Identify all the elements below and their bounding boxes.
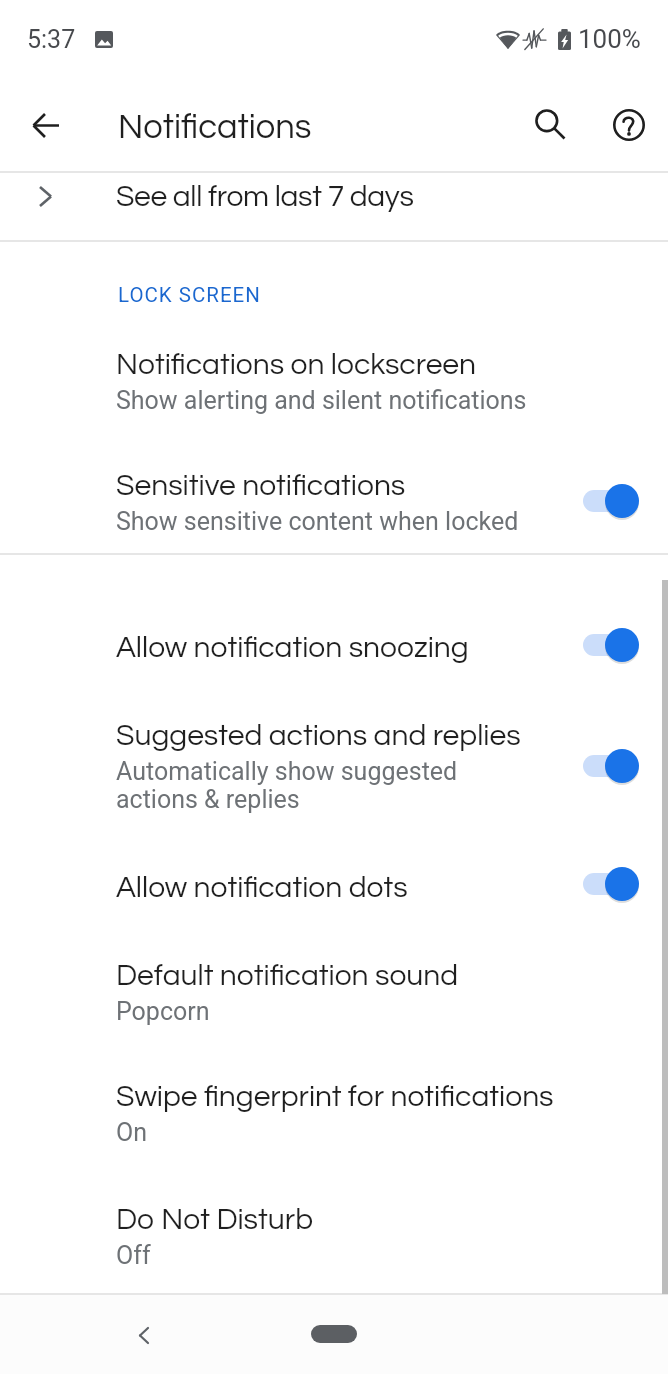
staticText: See all from last 7 days <box>116 181 414 212</box>
button[interactable]: Allow notification dots <box>0 848 668 914</box>
staticText: Swipe fingerprint for notifications <box>116 1081 554 1112</box>
button[interactable]: Home <box>311 1325 357 1343</box>
button[interactable]: Do Not Disturb <box>0 1182 668 1282</box>
staticText: Show sensitive content when locked <box>116 507 519 536</box>
button[interactable]: Help <box>595 91 663 159</box>
button[interactable]: Swipe fingerprint for notifications <box>0 1060 668 1160</box>
staticText: Default notification sound <box>116 960 459 991</box>
button[interactable]: Suggested actions and replies <box>0 700 668 828</box>
staticText: Popcorn <box>116 997 210 1026</box>
staticText: 5:37 <box>27 25 76 54</box>
staticText: Sensitive notifications <box>116 470 406 501</box>
button[interactable]: Sensitive notifications <box>0 450 668 550</box>
staticText: Show alerting and silent notifications <box>116 386 527 415</box>
button[interactable]: Allow notification snoozing <box>0 608 668 674</box>
button[interactable]: Back <box>109 1300 179 1370</box>
button[interactable]: Search <box>517 91 585 159</box>
button[interactable]: Notifications on lockscreen <box>0 330 668 430</box>
staticText: Allow notification snoozing <box>116 632 469 663</box>
staticText: LOCK SCREEN <box>118 283 261 307</box>
button[interactable]: Sensitive notifications toggle, on <box>575 480 647 522</box>
staticText: Allow notification dots <box>116 872 408 903</box>
button[interactable]: Suggested actions and replies toggle, on <box>575 745 647 787</box>
staticText: actions & replies <box>116 785 300 814</box>
staticText: Suggested actions and replies <box>116 720 521 751</box>
button[interactable]: Allow notification snoozing toggle, on <box>575 624 647 666</box>
staticText: Notifications on lockscreen <box>116 349 477 380</box>
staticText: On <box>116 1118 148 1147</box>
button[interactable]: See all from last 7 days <box>0 173 668 240</box>
button[interactable]: Default notification sound <box>0 938 668 1038</box>
staticText: Notifications <box>118 110 312 146</box>
staticText: Do Not Disturb <box>116 1204 314 1235</box>
button[interactable]: Back <box>12 91 80 159</box>
staticText: Automatically show suggested <box>116 757 458 786</box>
staticText: Off <box>116 1241 151 1270</box>
button[interactable]: Allow notification dots toggle, on <box>575 863 647 905</box>
staticText: 100% <box>578 24 641 54</box>
